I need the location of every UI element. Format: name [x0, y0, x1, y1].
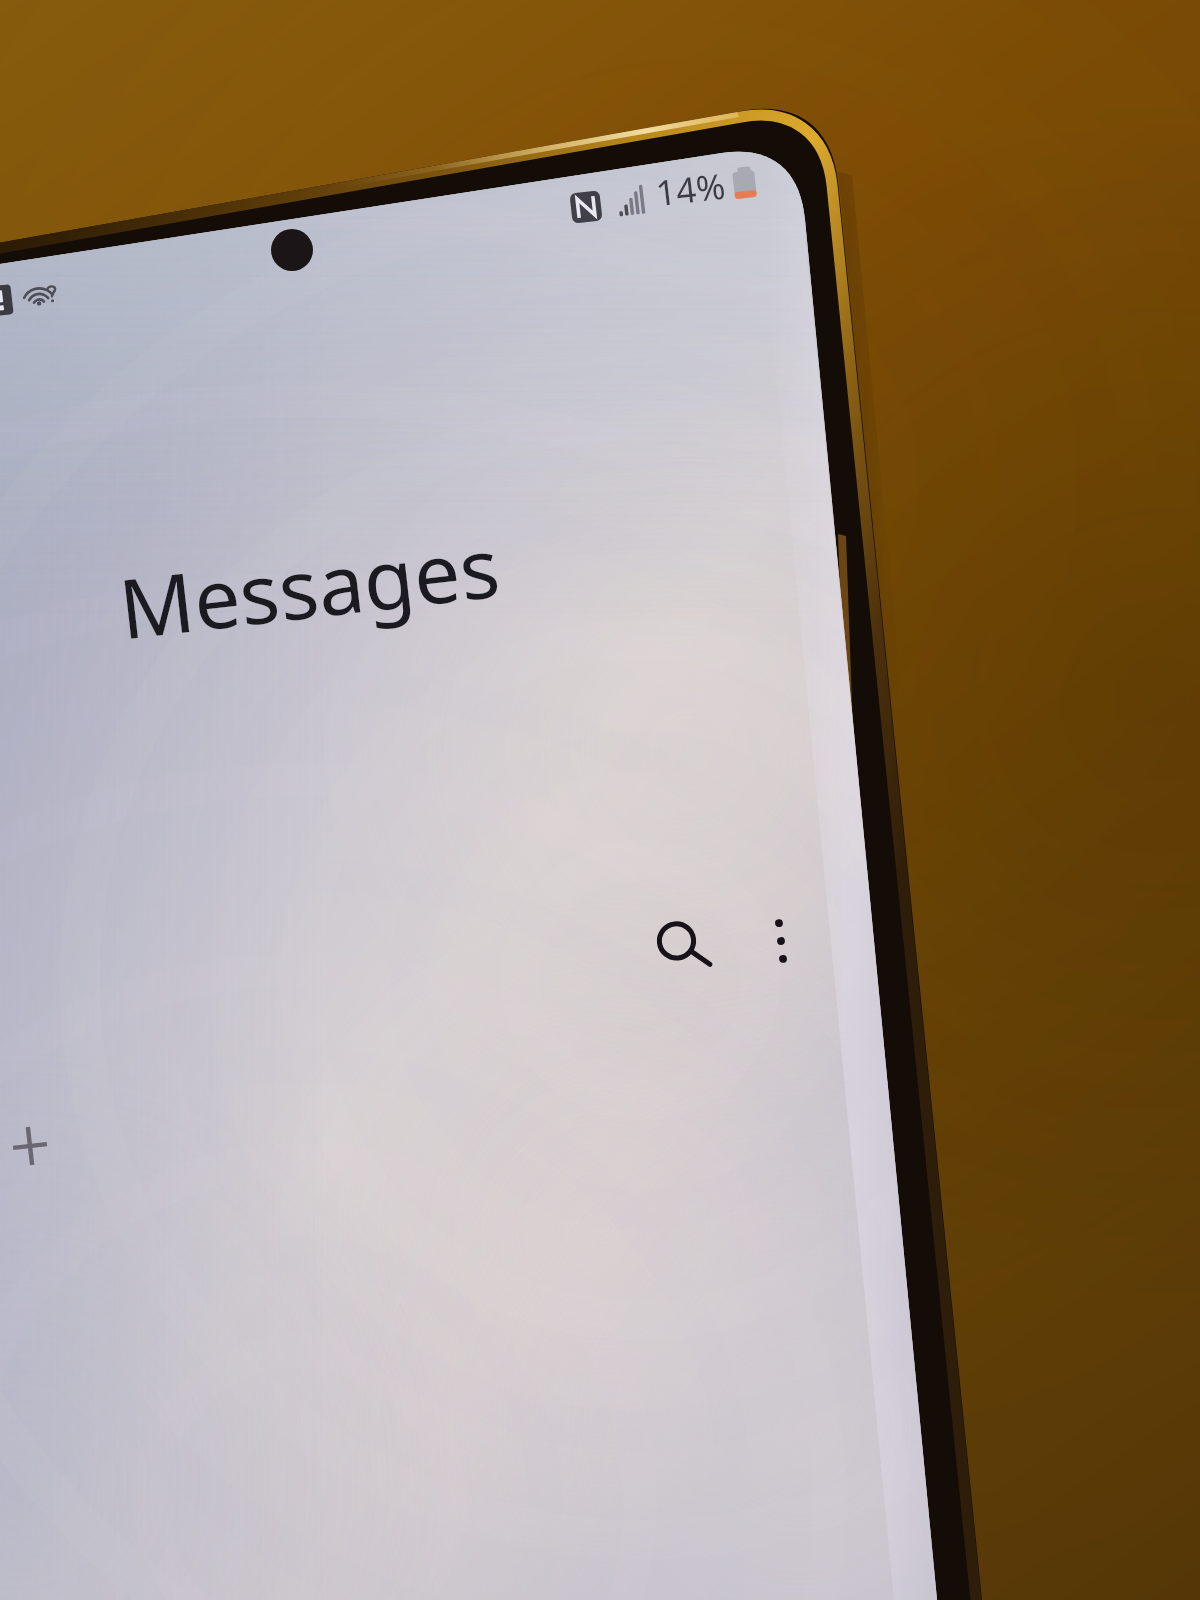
button[interactable]: Messages	[0, 0, 1200, 1600]
